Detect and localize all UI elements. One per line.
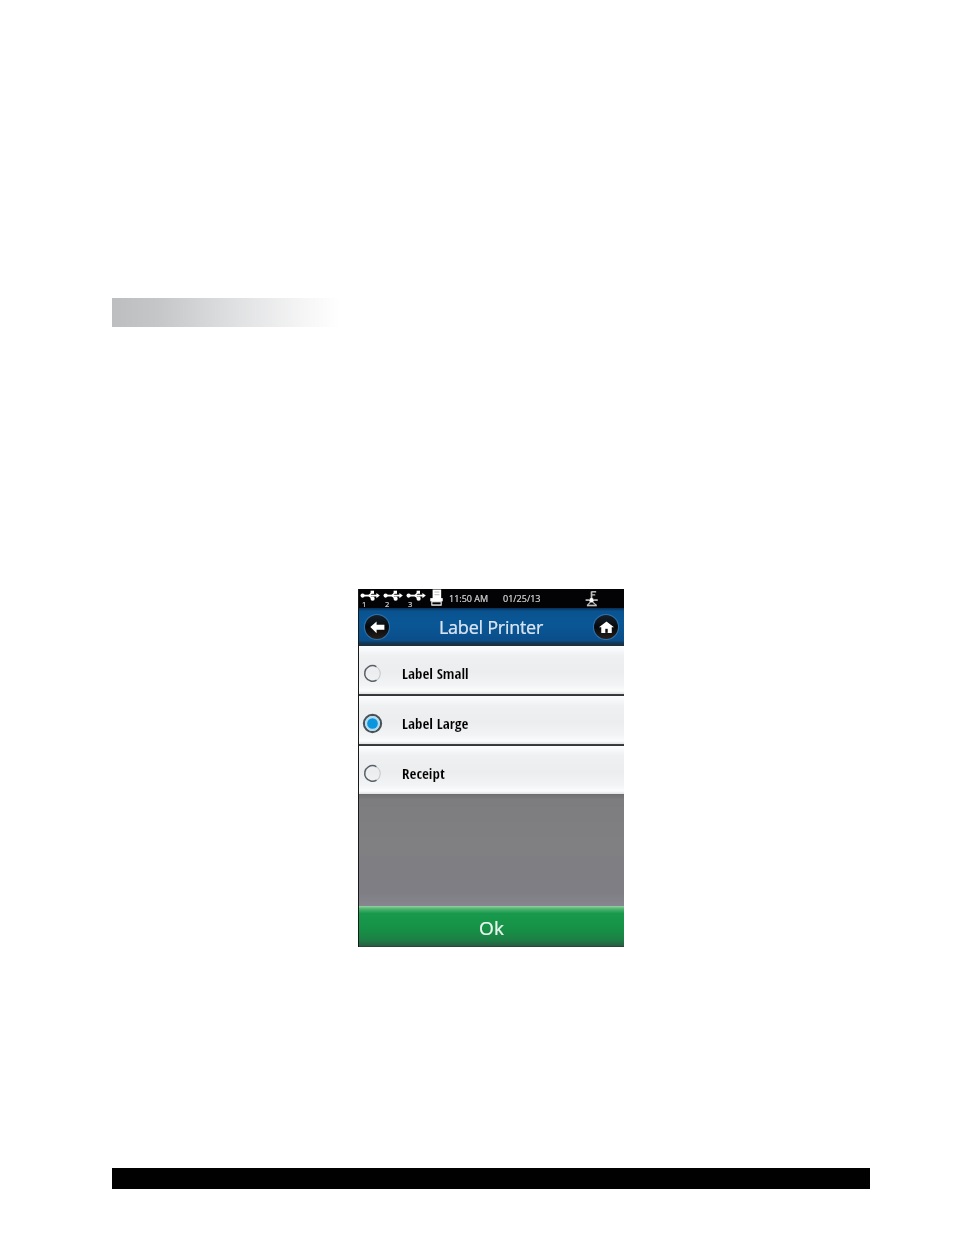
- button[interactable]: Label Large: [358, 696, 624, 744]
- button[interactable]: Ok: [358, 906, 624, 947]
- staticText: Label Large: [402, 713, 469, 733]
- button[interactable]: Home: [594, 615, 618, 639]
- staticText: 01/25/13: [503, 592, 541, 604]
- staticText: Ok: [479, 915, 504, 941]
- staticText: 3: [408, 599, 413, 609]
- staticText: Label Printer: [439, 615, 544, 640]
- staticText: 11:50 AM: [449, 592, 489, 604]
- staticText: Label Small: [402, 663, 469, 683]
- button[interactable]: Label Small: [358, 646, 624, 694]
- staticText: 2: [385, 599, 390, 609]
- button[interactable]: Back: [365, 615, 389, 639]
- staticText: 1: [362, 599, 367, 609]
- button[interactable]: Receipt: [358, 746, 624, 794]
- staticText: Receipt: [402, 763, 445, 783]
